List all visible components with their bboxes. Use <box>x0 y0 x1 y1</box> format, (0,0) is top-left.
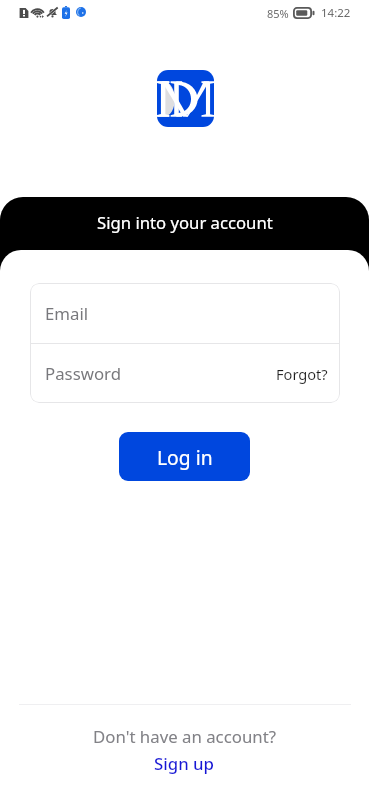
other: SIM alert <box>19 7 29 19</box>
staticText: Log in <box>157 444 213 470</box>
button[interactable]: Email <box>30 283 340 343</box>
staticText: Password <box>45 362 121 385</box>
button[interactable]: Password <box>30 344 340 403</box>
staticText: Don't have an account? <box>0 725 369 748</box>
staticText: Email <box>45 302 89 325</box>
button[interactable]: Log in <box>119 432 250 481</box>
staticText: Forgot? <box>276 364 328 384</box>
staticText: Sign into your account <box>97 211 273 234</box>
button[interactable]: Forgot? <box>276 364 328 384</box>
button[interactable]: Sign up <box>154 752 215 775</box>
staticText: Sign up <box>154 752 215 775</box>
other: Notifications off <box>46 6 59 19</box>
staticText: 14:22 <box>321 5 351 21</box>
staticText: 85% <box>267 6 289 21</box>
